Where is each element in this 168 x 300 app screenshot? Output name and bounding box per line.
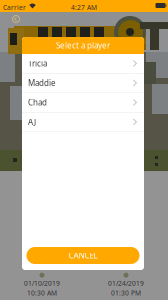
- staticText: Carrier: [3, 3, 26, 12]
- staticText: 01/10/2019: [24, 279, 60, 287]
- staticText: Maddie: [28, 78, 56, 88]
- staticText: 10:30 AM: [27, 288, 57, 297]
- staticText: AJ: [28, 117, 36, 127]
- button[interactable]: AJ: [22, 112, 144, 131]
- button[interactable]: Back: [10, 13, 22, 25]
- button[interactable]: Maddie: [22, 73, 144, 92]
- staticText: CANCEL: [68, 250, 97, 261]
- button[interactable]: CANCEL: [26, 247, 139, 264]
- staticText: 01:30 PM: [111, 288, 141, 297]
- button[interactable]: Chad: [22, 93, 144, 112]
- staticText: Select a player: [56, 40, 110, 51]
- button[interactable]: Tricia: [22, 54, 144, 73]
- staticText: Chad: [28, 97, 47, 108]
- staticText: 4:27 AM: [71, 3, 97, 12]
- staticText: Tricia: [28, 58, 47, 69]
- staticText: 01/24/2019: [108, 279, 144, 287]
